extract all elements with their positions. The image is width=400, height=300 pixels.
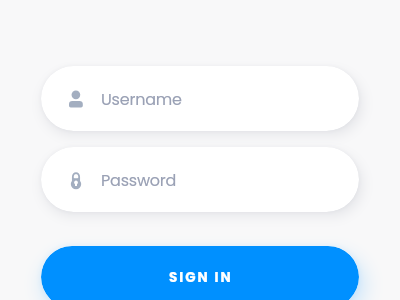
button[interactable]: Password	[41, 147, 359, 212]
staticText: Username	[101, 88, 182, 110]
button[interactable]: SIGN IN	[41, 246, 359, 300]
staticText: Password	[101, 169, 177, 191]
other: Password	[68, 171, 83, 189]
other: User	[68, 90, 83, 108]
button[interactable]: User	[41, 66, 359, 131]
staticText: SIGN IN	[169, 268, 233, 287]
